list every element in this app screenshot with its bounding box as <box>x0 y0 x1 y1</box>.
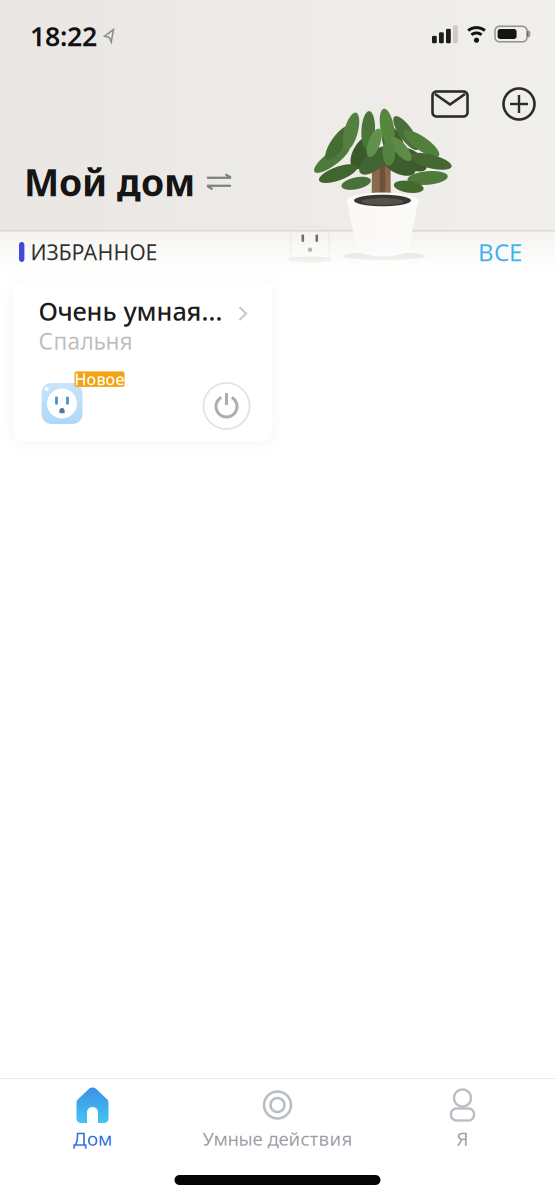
button[interactable]: Включить <box>201 381 251 431</box>
button[interactable]: Умные действия <box>185 1079 370 1151</box>
staticText: Спальня <box>38 326 132 356</box>
staticText: Я <box>456 1126 468 1151</box>
staticText: Дом <box>73 1126 112 1151</box>
staticText: ВСЕ <box>478 236 522 268</box>
button[interactable]: Добавить устройство <box>499 84 539 124</box>
staticText: Умные действия <box>202 1126 352 1151</box>
button[interactable]: ВСЕ <box>478 236 522 268</box>
staticText: Очень умная... <box>38 294 222 328</box>
staticText: ИЗБРАННОЕ <box>30 238 157 266</box>
button[interactable]: Очень умная... <box>13 281 272 441</box>
staticText: Новое <box>74 368 124 390</box>
button[interactable]: Центр сообщений <box>428 84 472 124</box>
button[interactable]: Сменить дом <box>24 157 231 207</box>
button[interactable]: Дом <box>0 1079 185 1151</box>
staticText: 18:22 <box>30 18 97 54</box>
button[interactable]: Я <box>370 1079 555 1151</box>
staticText: Мой дом <box>24 157 195 207</box>
